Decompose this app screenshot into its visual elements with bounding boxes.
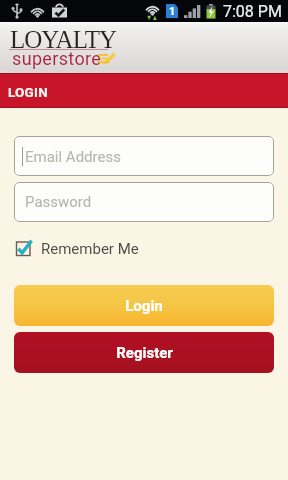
- button[interactable]: Password: [14, 182, 274, 222]
- button[interactable]: Remember Me checkbox, checked: [15, 240, 143, 258]
- staticText: Password: [25, 193, 92, 211]
- staticText: Login: [125, 297, 163, 315]
- button[interactable]: Email Address: [14, 136, 274, 176]
- other: Remember Me checkbox, checked: [15, 240, 33, 258]
- staticText: Register: [116, 344, 173, 362]
- staticText: LOYALTY: [10, 26, 116, 54]
- staticText: 7:08 PM: [223, 2, 282, 21]
- staticText: LOGIN: [8, 84, 48, 100]
- button[interactable]: Register: [14, 332, 274, 373]
- staticText: 1: [169, 5, 176, 18]
- staticText: Email Address: [25, 148, 121, 166]
- staticText: Remember Me: [41, 240, 139, 258]
- staticText: superstore: [12, 48, 102, 69]
- button[interactable]: Login: [14, 285, 274, 326]
